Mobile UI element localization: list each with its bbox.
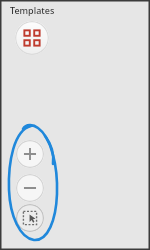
button[interactable]: Select tool [16,204,44,232]
button[interactable]: Zoom out [16,174,44,202]
button[interactable]: Templates [15,21,49,55]
button[interactable]: Zoom in [16,140,44,168]
staticText: Templates [10,4,55,16]
